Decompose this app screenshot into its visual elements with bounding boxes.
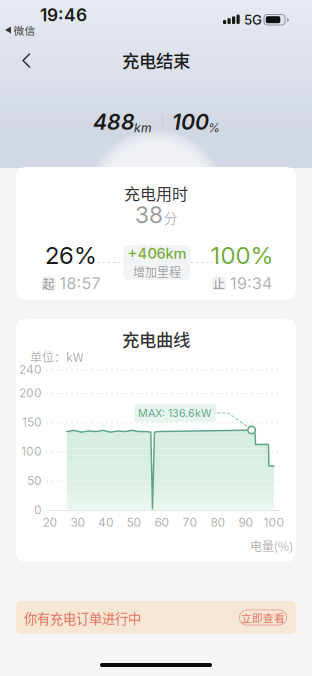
staticText: 50: [126, 515, 141, 530]
staticText: 26%: [45, 241, 97, 270]
staticText: 100: [172, 109, 209, 135]
staticText: 19:46: [40, 4, 87, 25]
staticText: 微信: [13, 22, 35, 38]
staticText: 增加里程: [133, 263, 181, 281]
staticText: 30: [70, 515, 85, 530]
staticText: 你有充电订单进行中: [24, 608, 141, 628]
staticText: 止: [213, 275, 225, 292]
staticText: 150: [22, 415, 42, 429]
staticText: 电量(%): [250, 537, 293, 554]
staticText: 38: [135, 201, 163, 229]
staticText: 充电曲线: [122, 326, 190, 352]
staticText: 5G: [244, 12, 262, 28]
staticText: 50: [27, 473, 42, 488]
staticText: 40: [98, 515, 114, 530]
staticText: %: [208, 121, 220, 135]
staticText: 240: [19, 362, 42, 377]
staticText: 单位：kW: [30, 348, 84, 365]
staticText: 488: [93, 109, 135, 135]
staticText: km: [134, 121, 152, 135]
staticText: 充电结束: [122, 47, 190, 73]
staticText: 70: [182, 515, 197, 530]
staticText: 100: [263, 515, 284, 530]
staticText: 90: [238, 515, 253, 530]
staticText: MAX: 136.6kW: [138, 406, 212, 419]
staticText: 200: [19, 386, 42, 400]
button[interactable]: Back: [12, 43, 41, 78]
staticText: +406km: [127, 244, 186, 262]
staticText: 100%: [210, 241, 273, 270]
staticText: 19:34: [230, 274, 272, 293]
staticText: 立即查看: [241, 610, 285, 625]
staticText: 充电用时: [124, 181, 188, 205]
button[interactable]: 微信: [5, 24, 45, 36]
staticText: 起: [42, 275, 54, 292]
staticText: 100: [21, 444, 42, 459]
staticText: 20: [42, 515, 57, 530]
staticText: 18:57: [59, 274, 100, 293]
staticText: 60: [154, 515, 169, 530]
staticText: 80: [210, 515, 225, 530]
button[interactable]: 立即查看: [239, 609, 287, 625]
staticText: 0: [34, 503, 42, 517]
staticText: 分: [164, 208, 177, 227]
